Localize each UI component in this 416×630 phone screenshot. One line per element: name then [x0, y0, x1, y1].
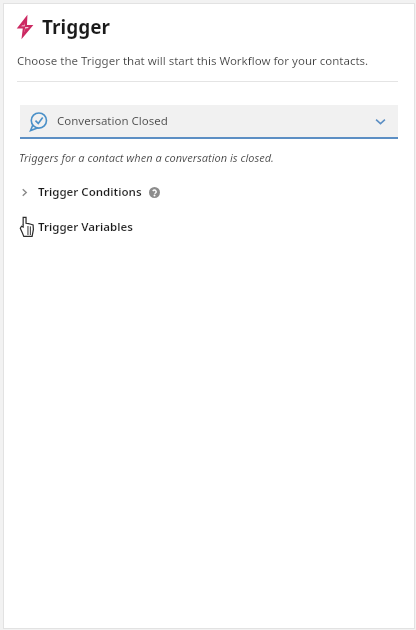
staticText: Trigger Variables — [38, 219, 133, 235]
button[interactable]: Trigger Variables — [3, 216, 415, 238]
button[interactable]: Trigger Conditions — [3, 181, 415, 203]
staticText: Choose the Trigger that will start this … — [17, 53, 369, 69]
button[interactable]: Conversation Closed — [20, 105, 398, 139]
other: Trigger — [15, 17, 35, 37]
other: Help — [149, 187, 160, 198]
staticText: Triggers for a contact when a conversati… — [19, 150, 274, 165]
staticText: Trigger — [42, 14, 111, 40]
staticText: Trigger Conditions — [38, 184, 142, 200]
staticText: Conversation Closed — [57, 113, 168, 129]
